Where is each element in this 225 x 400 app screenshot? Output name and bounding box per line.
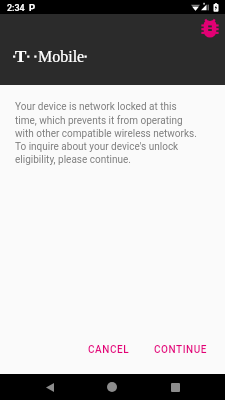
button[interactable]: CANCEL bbox=[83, 340, 135, 360]
button[interactable]: Debug bug report bbox=[199, 17, 221, 39]
staticText: Your device is network locked at this ti… bbox=[15, 101, 199, 165]
staticText: 2:34 bbox=[7, 3, 25, 14]
staticText: T bbox=[15, 47, 27, 66]
button[interactable]: Recent apps bbox=[155, 374, 195, 400]
button[interactable]: Home bbox=[92, 374, 132, 400]
staticText: P bbox=[29, 2, 36, 13]
staticText: Mobile bbox=[38, 48, 85, 66]
staticText: CANCEL bbox=[88, 344, 130, 356]
button[interactable]: Back bbox=[30, 374, 70, 400]
staticText: CONTINUE bbox=[154, 344, 207, 356]
button[interactable]: CONTINUE bbox=[149, 340, 212, 360]
